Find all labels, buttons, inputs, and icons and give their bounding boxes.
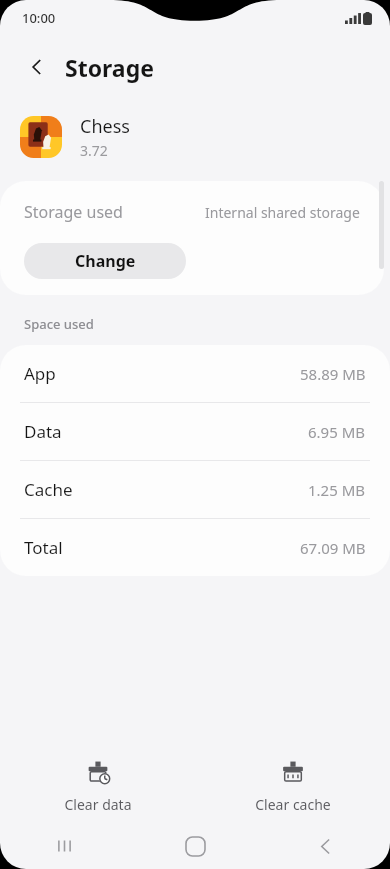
button[interactable]: Cache xyxy=(0,461,390,519)
button[interactable]: Home xyxy=(130,823,260,869)
button[interactable]: Change xyxy=(24,243,186,279)
button[interactable]: Data xyxy=(0,403,390,461)
staticText: Data xyxy=(24,420,62,443)
staticText: Total xyxy=(24,536,63,559)
staticText: Clear cache xyxy=(255,795,331,814)
staticText: App xyxy=(24,362,56,385)
staticText: Change xyxy=(75,250,136,272)
staticText: Cache xyxy=(24,478,73,501)
button[interactable]: Total xyxy=(0,519,390,576)
staticText: Internal shared storage xyxy=(205,203,360,222)
button[interactable]: App xyxy=(0,345,390,403)
staticText: Storage xyxy=(65,52,154,83)
staticText: Chess xyxy=(80,114,130,139)
button[interactable]: Recents xyxy=(0,823,130,869)
staticText: 6.95 MB xyxy=(308,422,366,442)
staticText: 1.25 MB xyxy=(308,480,366,500)
button[interactable]: Clear data xyxy=(0,751,195,823)
button[interactable]: Storage used xyxy=(0,181,384,243)
button[interactable]: Clear cache xyxy=(195,751,390,823)
button[interactable]: Back xyxy=(260,823,390,869)
button[interactable]: Back xyxy=(18,48,56,86)
staticText: Storage used xyxy=(24,201,123,223)
staticText: 10:00 xyxy=(22,9,56,27)
staticText: 67.09 MB xyxy=(300,538,366,558)
staticText: 58.89 MB xyxy=(300,364,366,384)
staticText: Space used xyxy=(24,315,94,333)
staticText: 3.72 xyxy=(80,141,108,160)
staticText: Clear data xyxy=(64,795,132,814)
